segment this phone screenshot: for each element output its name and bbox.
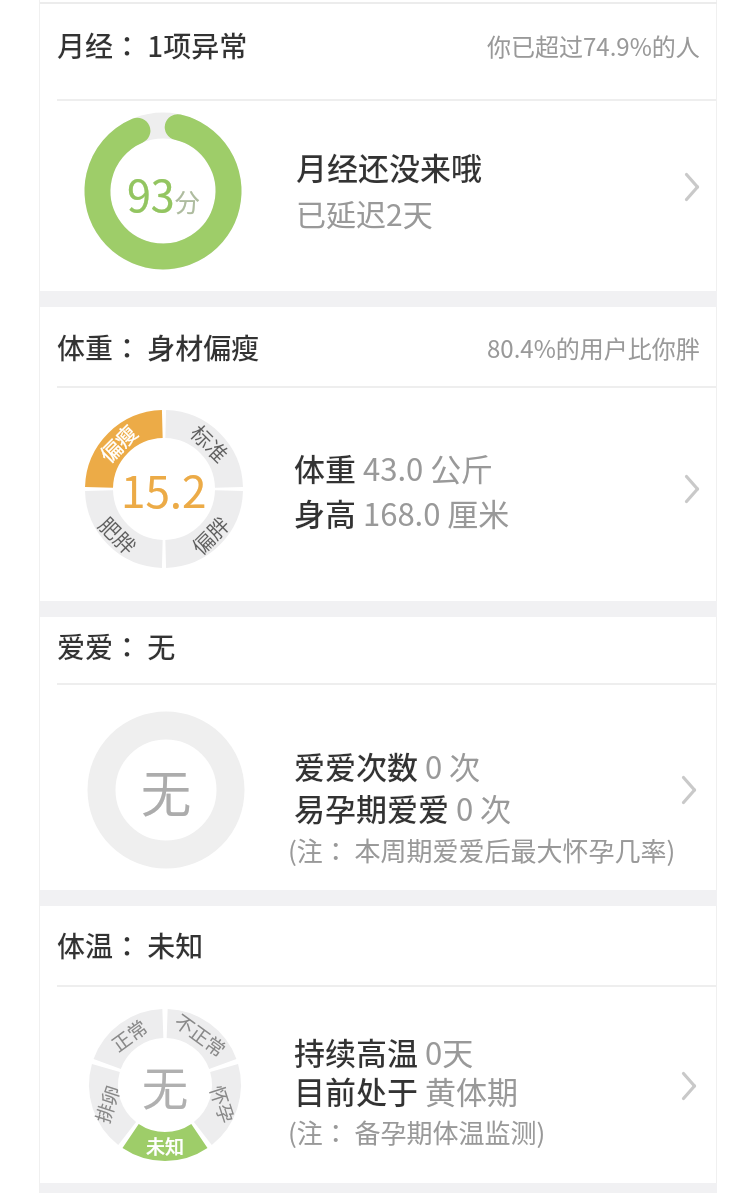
staticText: 体重： 身材偏瘦 <box>57 327 260 368</box>
staticText: 持续高温 0天 <box>294 1029 474 1074</box>
staticText: 体重 43.0 公斤 <box>294 445 493 490</box>
button[interactable] <box>40 617 717 890</box>
staticText: 已延迟2天 <box>296 191 433 234</box>
staticText: 肥胖 <box>92 509 143 560</box>
staticText: 正常 <box>105 1012 153 1057</box>
staticText: 月经： 1项异常 <box>57 25 248 66</box>
staticText: 93分 <box>127 162 200 224</box>
staticText: 未知 <box>146 1132 185 1160</box>
staticText: 无 <box>142 1052 188 1119</box>
staticText: 偏胖 <box>184 509 235 560</box>
staticText: 怀孕 <box>204 1082 242 1127</box>
staticText: 偏瘦 <box>92 417 143 468</box>
staticText: 爱爱次数 0 次 <box>294 743 481 788</box>
button[interactable] <box>40 307 717 601</box>
staticText: 不正常 <box>169 1007 233 1063</box>
button[interactable] <box>40 0 717 291</box>
staticText: 月经还没来哦 <box>296 144 482 189</box>
staticText: 标准 <box>184 417 235 468</box>
staticText: 目前处于 黄体期 <box>294 1068 518 1113</box>
staticText: 80.4%的用户比你胖 <box>487 330 700 365</box>
staticText: 体温： 未知 <box>57 925 204 966</box>
staticText: (注： 备孕期体温监测) <box>288 1113 546 1151</box>
staticText: 爱爱： 无 <box>57 626 176 667</box>
staticText: 易孕期爱爱 0 次 <box>294 785 512 830</box>
staticText: 排卵 <box>88 1081 126 1126</box>
staticText: (注： 本周期爱爱后最大怀孕几率) <box>288 831 676 869</box>
button[interactable] <box>40 906 717 1183</box>
staticText: 15.2 <box>121 457 207 521</box>
staticText: 你已超过74.9%的人 <box>487 28 700 63</box>
staticText: 身高 168.0 厘米 <box>294 490 510 535</box>
staticText: 无 <box>141 754 191 826</box>
